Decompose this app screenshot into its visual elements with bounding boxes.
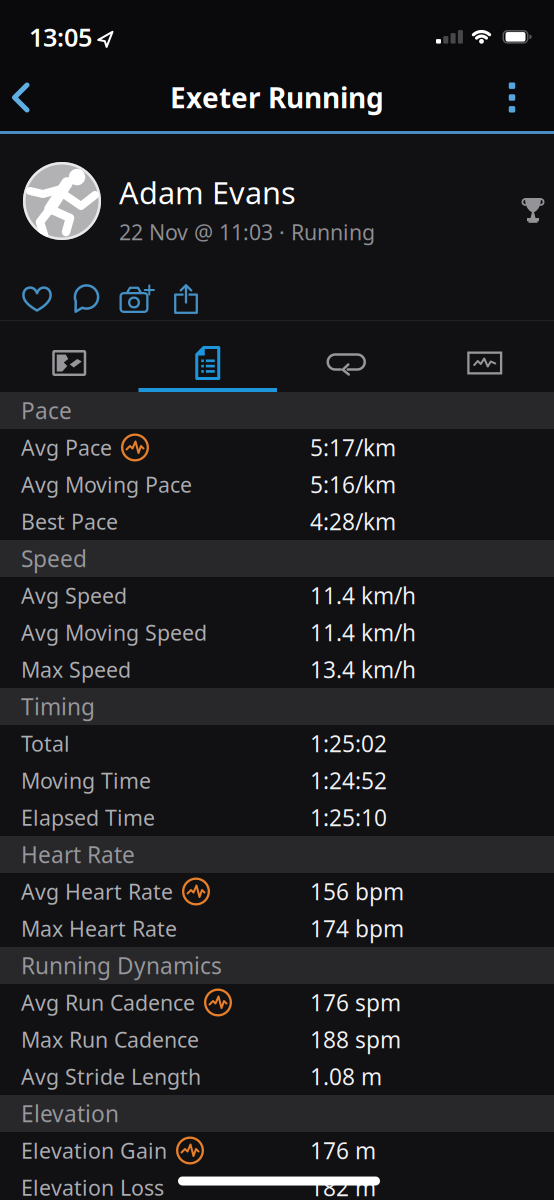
staticText: Elevation Loss [21,1173,164,1200]
staticText: Elevation Gain [21,1136,167,1165]
button[interactable]: Stats [138,334,277,392]
staticText: Running Dynamics [21,950,222,980]
button[interactable]: Laps [277,334,415,392]
staticText: Speed [21,543,87,573]
button[interactable]: Share [172,277,200,321]
staticText: 13:05 [29,20,92,54]
staticText: Best Pace [21,507,118,536]
staticText: 11.4 km/h [310,617,416,647]
staticText: Elapsed Time [21,803,155,832]
staticText: 1:24:52 [310,765,387,795]
staticText: Exeter Running [170,79,384,116]
staticText: Timing [21,691,95,721]
staticText: 1:25:10 [310,802,387,832]
staticText: 188 spm [310,1024,401,1054]
staticText: Moving Time [21,766,151,795]
staticText: Avg Heart Rate [21,877,173,906]
staticText: 5:17/km [310,432,396,462]
staticText: Avg Speed [21,581,127,610]
staticText: 1:25:02 [310,728,387,758]
staticText: Pace [21,395,72,425]
staticText: 182 m [310,1172,376,1200]
button[interactable]: Back [1,72,41,122]
staticText: 156 bpm [310,876,404,906]
staticText: Adam Evans [119,172,296,213]
button[interactable]: Map [0,334,138,392]
staticText: Avg Moving Pace [21,470,192,499]
staticText: Avg Pace [21,433,112,462]
staticText: 11.4 km/h [310,580,416,610]
staticText: 176 m [310,1135,376,1165]
button[interactable]: Charts [415,334,554,392]
staticText: Elevation [21,1098,119,1128]
staticText: 13.4 km/h [310,654,416,684]
staticText: 174 bpm [310,913,404,943]
staticText: Avg Moving Speed [21,618,207,647]
staticText: Total [21,729,70,758]
staticText: 5:16/km [310,469,396,499]
staticText: Avg Stride Length [21,1062,201,1091]
staticText: 22 Nov @ 11:03 · Running [119,218,375,246]
staticText: 1.08 m [310,1061,382,1091]
staticText: 176 spm [310,987,401,1017]
button[interactable]: Like [21,277,53,321]
staticText: Heart Rate [21,839,135,869]
button[interactable]: More options [490,72,534,122]
staticText: 4:28/km [310,506,396,536]
button[interactable]: Add photo [119,277,155,321]
staticText: Max Heart Rate [21,914,177,943]
staticText: Max Run Cadence [21,1025,199,1054]
button[interactable]: Comment [70,277,102,321]
staticText: Max Speed [21,655,131,684]
staticText: Avg Run Cadence [21,988,195,1017]
